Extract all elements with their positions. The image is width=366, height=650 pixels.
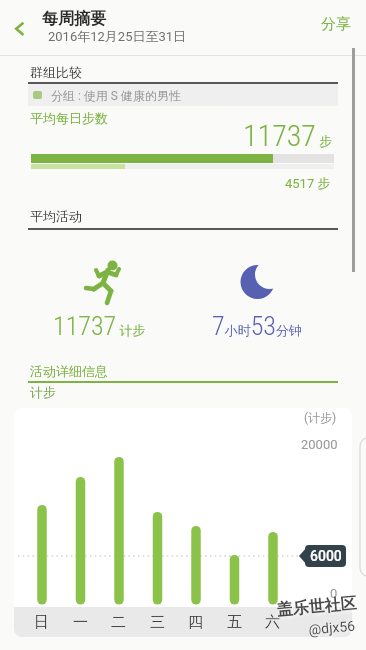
- staticText: 六: [265, 613, 280, 632]
- staticText: 2016年12月25日至31日: [48, 28, 187, 44]
- staticText: 11737 计步: [53, 311, 146, 341]
- staticText: 每周摘要: [42, 9, 106, 29]
- staticText: 二: [111, 613, 126, 632]
- staticText: 四: [188, 613, 203, 632]
- staticText: 活动详细信息: [30, 363, 108, 379]
- staticText: 20000: [301, 437, 338, 452]
- staticText: 11737 步: [243, 118, 333, 153]
- staticText: 日: [34, 613, 49, 632]
- staticText: 分享: [321, 15, 351, 34]
- staticText: 三: [150, 613, 165, 632]
- staticText: 分组 : 使用 S 健康的男性: [45, 88, 181, 103]
- staticText: 五: [227, 613, 242, 632]
- staticText: 平均活动: [30, 208, 82, 224]
- button[interactable]: 分享: [306, 0, 366, 48]
- staticText: 盖乐世社区: [276, 593, 357, 620]
- button[interactable]: 分组 : 使用 S 健康的男性: [28, 84, 338, 106]
- staticText: 计步: [30, 384, 56, 400]
- staticText: (计步): [304, 410, 337, 425]
- staticText: 群组比较: [30, 64, 82, 80]
- staticText: 平均每日步数: [30, 110, 108, 126]
- staticText: 7小时53分钟: [212, 311, 302, 341]
- staticText: 一: [73, 613, 88, 632]
- staticText: @djx56: [308, 618, 356, 638]
- button[interactable]: [4, 10, 40, 46]
- staticText: 4517 步: [285, 175, 331, 191]
- staticText: 0: [330, 586, 338, 601]
- staticText: 6000: [310, 548, 342, 564]
